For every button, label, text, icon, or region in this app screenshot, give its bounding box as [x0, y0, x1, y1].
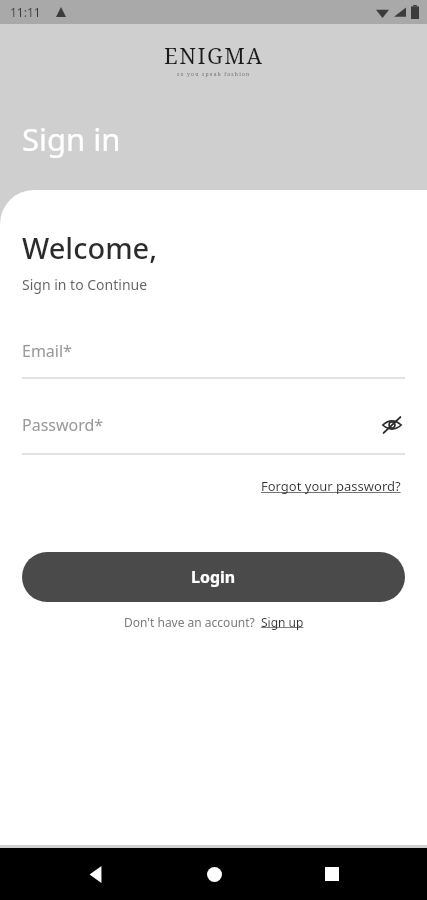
staticText: Sign in to Continue	[22, 275, 148, 294]
staticText: Sign in	[22, 118, 121, 160]
staticText: Don't have an account?	[124, 614, 255, 630]
button[interactable]: Back	[71, 850, 119, 898]
button[interactable]: Show password	[379, 412, 405, 438]
button[interactable]: Sign up	[261, 614, 304, 630]
button[interactable]: Login	[22, 552, 405, 602]
staticText: Email*	[22, 340, 72, 362]
staticText: so you speak fashion	[177, 71, 251, 78]
staticText: Welcome,	[22, 228, 158, 267]
button[interactable]: Home	[190, 850, 238, 898]
staticText: ENIGMA	[164, 40, 264, 70]
staticText: Login	[191, 566, 236, 588]
staticText: 11:11	[10, 4, 41, 20]
staticText: Forgot your password?	[261, 477, 401, 495]
staticText: Sign up	[261, 614, 304, 630]
button[interactable]: Forgot your password?	[257, 473, 405, 499]
button[interactable]: Email*	[22, 340, 405, 379]
staticText: Password*	[22, 414, 379, 436]
button[interactable]: Recent apps	[308, 850, 356, 898]
button[interactable]: Password*	[22, 412, 405, 438]
